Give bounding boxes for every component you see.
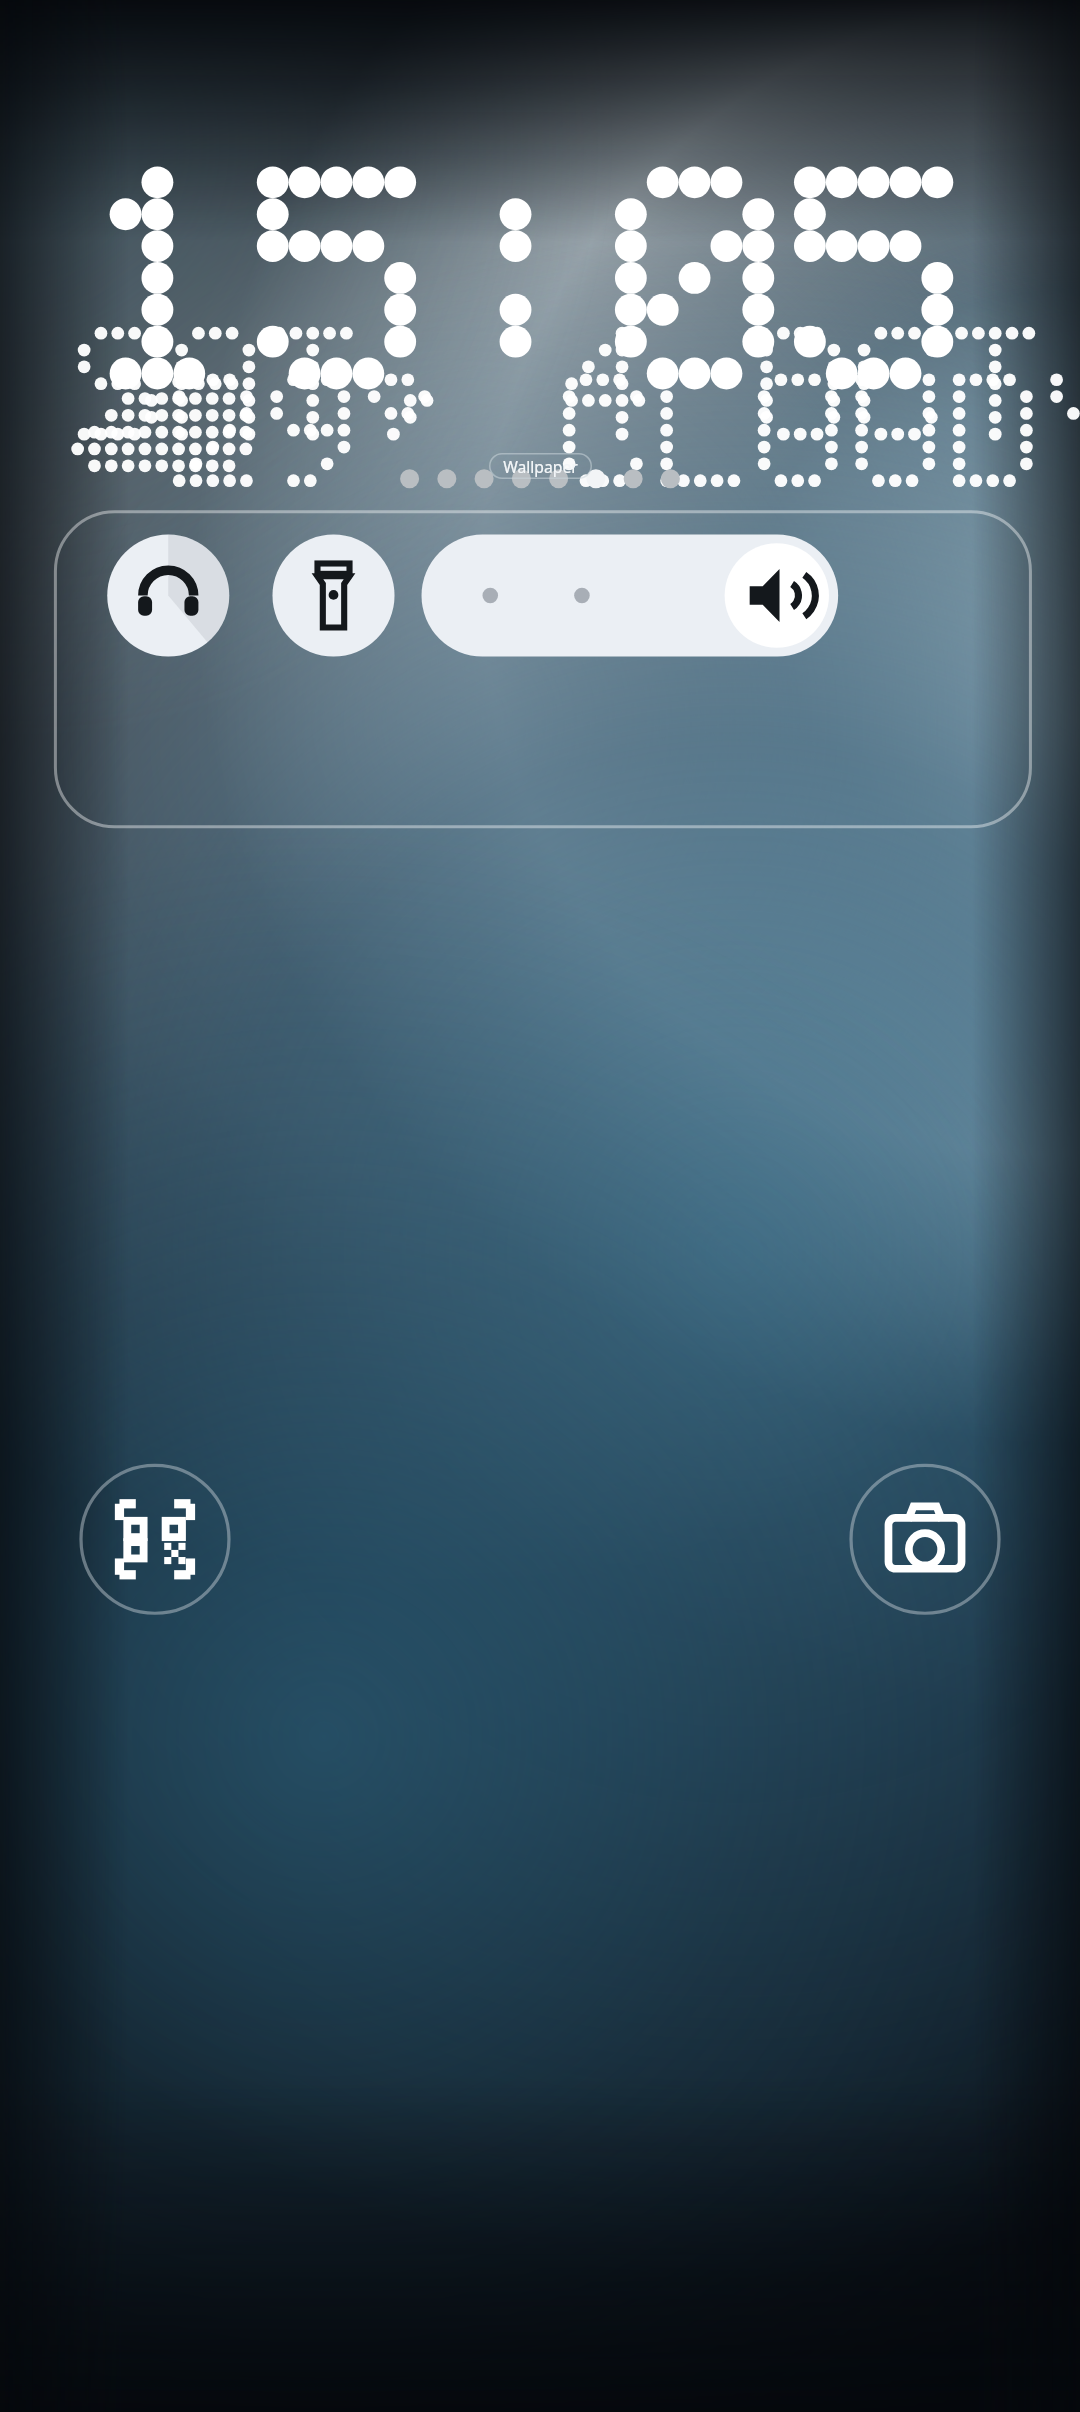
button[interactable]: Flashlight	[83, 195, 127, 239]
button[interactable]: Headphones	[23, 195, 67, 239]
button[interactable]: Volume	[153, 195, 305, 239]
button[interactable]: Scan QR code	[29, 533, 83, 587]
button[interactable]: Wallpaper	[489, 453, 592, 479]
button[interactable]: Camera	[309, 533, 363, 587]
staticText: Wallpaper	[503, 456, 578, 477]
